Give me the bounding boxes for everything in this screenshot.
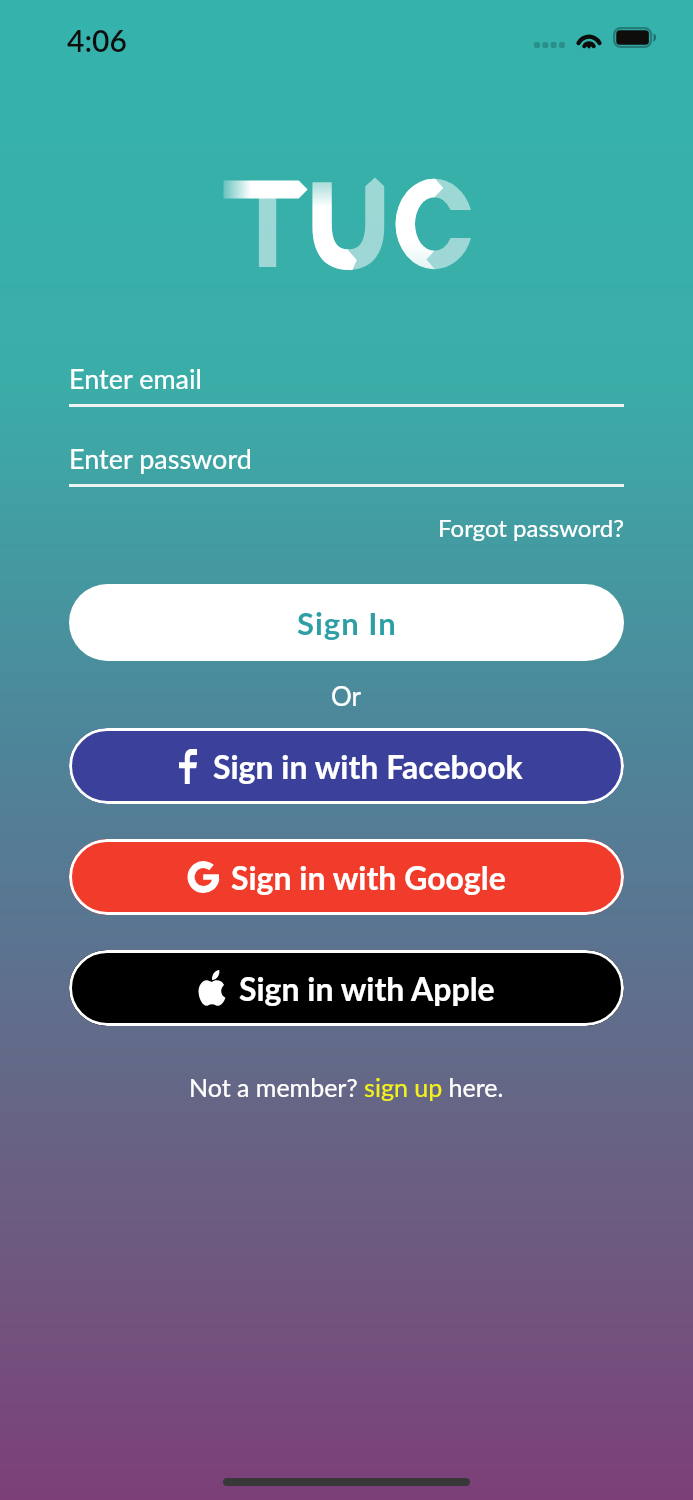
button[interactable]: Sign In bbox=[69, 584, 624, 661]
staticText: Sign in with Facebook bbox=[213, 747, 523, 785]
button[interactable]: Sign in with Google bbox=[69, 839, 624, 915]
other: Cellular signal bbox=[534, 42, 565, 48]
staticText: Enter email bbox=[69, 362, 202, 394]
staticText: Forgot password? bbox=[438, 513, 624, 542]
button[interactable]: Enter email bbox=[69, 362, 624, 407]
other: Battery bbox=[613, 27, 657, 48]
staticText: Not a member? sign up here. bbox=[189, 1072, 504, 1102]
button[interactable]: Forgot password? bbox=[438, 513, 624, 542]
staticText: Enter password bbox=[69, 442, 252, 474]
staticText: Sign In bbox=[297, 604, 397, 641]
button[interactable]: Not a member? sign up here. bbox=[189, 1072, 504, 1102]
button[interactable]: Sign in with Facebook bbox=[69, 728, 624, 804]
staticText: Sign in with Google bbox=[231, 858, 506, 896]
other: Wi-Fi bbox=[575, 27, 603, 48]
button[interactable]: Sign in with Apple bbox=[69, 950, 624, 1026]
staticText: Or bbox=[331, 680, 362, 711]
button[interactable]: Enter password bbox=[69, 442, 624, 487]
staticText: Sign in with Apple bbox=[239, 969, 495, 1007]
staticText: 4:06 bbox=[67, 22, 127, 58]
other: TUC bbox=[222, 177, 477, 270]
